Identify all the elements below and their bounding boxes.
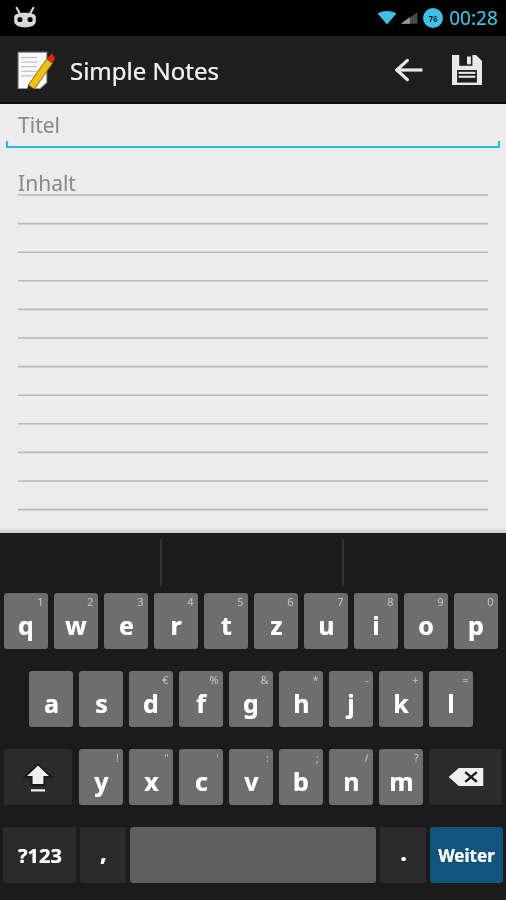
staticText: y — [94, 764, 109, 798]
staticText: ?123 — [18, 842, 62, 869]
staticText: 5 — [237, 594, 244, 609]
staticText: 6 — [287, 594, 294, 609]
button[interactable]: r — [154, 593, 198, 649]
staticText: & — [260, 672, 269, 687]
staticText: n — [343, 764, 360, 798]
staticText: : — [266, 750, 269, 765]
staticText: " — [164, 750, 169, 765]
staticText: 76 — [428, 13, 438, 24]
button[interactable]: . — [380, 827, 426, 883]
staticText: - — [365, 672, 369, 687]
staticText: 9 — [437, 594, 444, 609]
button[interactable]: t — [204, 593, 248, 649]
staticText: + — [412, 672, 419, 687]
staticText: v — [244, 764, 259, 798]
staticText: 7 — [337, 594, 344, 609]
button[interactable]: g — [229, 671, 273, 727]
button[interactable]: d — [129, 671, 173, 727]
button[interactable]: w — [54, 593, 98, 649]
staticText: s — [95, 686, 108, 720]
staticText: r — [170, 608, 182, 642]
button[interactable]: y — [79, 749, 123, 805]
button[interactable]: j — [329, 671, 373, 727]
button[interactable]: Back — [380, 41, 438, 99]
staticText: i — [372, 608, 380, 642]
staticText: h — [293, 686, 310, 720]
staticText: * — [312, 672, 319, 687]
staticText: ? — [414, 750, 419, 765]
button[interactable]: i — [354, 593, 398, 649]
button[interactable]: e — [104, 593, 148, 649]
staticText: c — [195, 764, 208, 798]
button[interactable]: o — [404, 593, 448, 649]
staticText: Inhalt — [18, 169, 76, 198]
staticText: 00:28 — [449, 5, 498, 31]
button[interactable]: Inhalt — [0, 151, 506, 533]
staticText: e — [119, 608, 134, 642]
button[interactable]: f — [179, 671, 223, 727]
staticText: = — [462, 672, 469, 687]
staticText: ! — [116, 750, 119, 765]
staticText: l — [447, 686, 455, 720]
staticText: u — [318, 608, 335, 642]
staticText: q — [18, 608, 34, 642]
staticText: d — [143, 686, 159, 720]
staticText: % — [209, 672, 219, 687]
staticText: 0 — [487, 594, 494, 609]
staticText: 4 — [187, 594, 194, 609]
button[interactable]: Titel — [0, 104, 506, 151]
staticText: a — [44, 686, 59, 720]
button[interactable]: s — [79, 671, 123, 727]
staticText: b — [293, 764, 309, 798]
staticText: p — [468, 608, 484, 642]
button[interactable]: v — [229, 749, 273, 805]
button[interactable]: c — [179, 749, 223, 805]
button[interactable]: Save — [438, 41, 496, 99]
button[interactable]: u — [304, 593, 348, 649]
button[interactable]: Backspace — [429, 749, 502, 805]
staticText: Titel — [18, 111, 60, 140]
button[interactable]: a — [29, 671, 73, 727]
staticText: k — [393, 686, 409, 720]
button[interactable]: n — [329, 749, 373, 805]
staticText: z — [270, 608, 283, 642]
staticText: ; — [316, 750, 319, 765]
button[interactable]: Shift — [4, 749, 72, 805]
staticText: x — [144, 764, 159, 798]
staticText: Weiter — [438, 844, 495, 867]
staticText: / — [364, 750, 369, 765]
staticText: € — [162, 672, 169, 687]
button[interactable]: q — [4, 593, 48, 649]
staticText: m — [389, 764, 414, 798]
staticText: o — [418, 608, 434, 642]
button[interactable]: b — [279, 749, 323, 805]
staticText: 1 — [37, 594, 44, 609]
staticText: w — [65, 608, 87, 642]
staticText: 2 — [87, 594, 94, 609]
staticText: . — [400, 835, 407, 868]
staticText: Simple Notes — [70, 54, 219, 87]
button[interactable]: x — [129, 749, 173, 805]
button[interactable]: , — [80, 827, 126, 883]
staticText: 8 — [387, 594, 394, 609]
button[interactable]: m — [379, 749, 423, 805]
staticText: j — [347, 686, 355, 720]
button[interactable]: p — [454, 593, 498, 649]
button[interactable]: z — [254, 593, 298, 649]
staticText: f — [196, 686, 206, 720]
staticText: t — [221, 608, 232, 642]
button[interactable]: ?123 — [3, 827, 76, 883]
button[interactable]: Weiter — [430, 827, 503, 883]
button[interactable]: h — [279, 671, 323, 727]
staticText: , — [100, 835, 107, 868]
staticText: ' — [216, 750, 219, 765]
button[interactable]: k — [379, 671, 423, 727]
staticText: 3 — [137, 594, 144, 609]
button[interactable]: l — [429, 671, 473, 727]
staticText: g — [243, 686, 259, 720]
